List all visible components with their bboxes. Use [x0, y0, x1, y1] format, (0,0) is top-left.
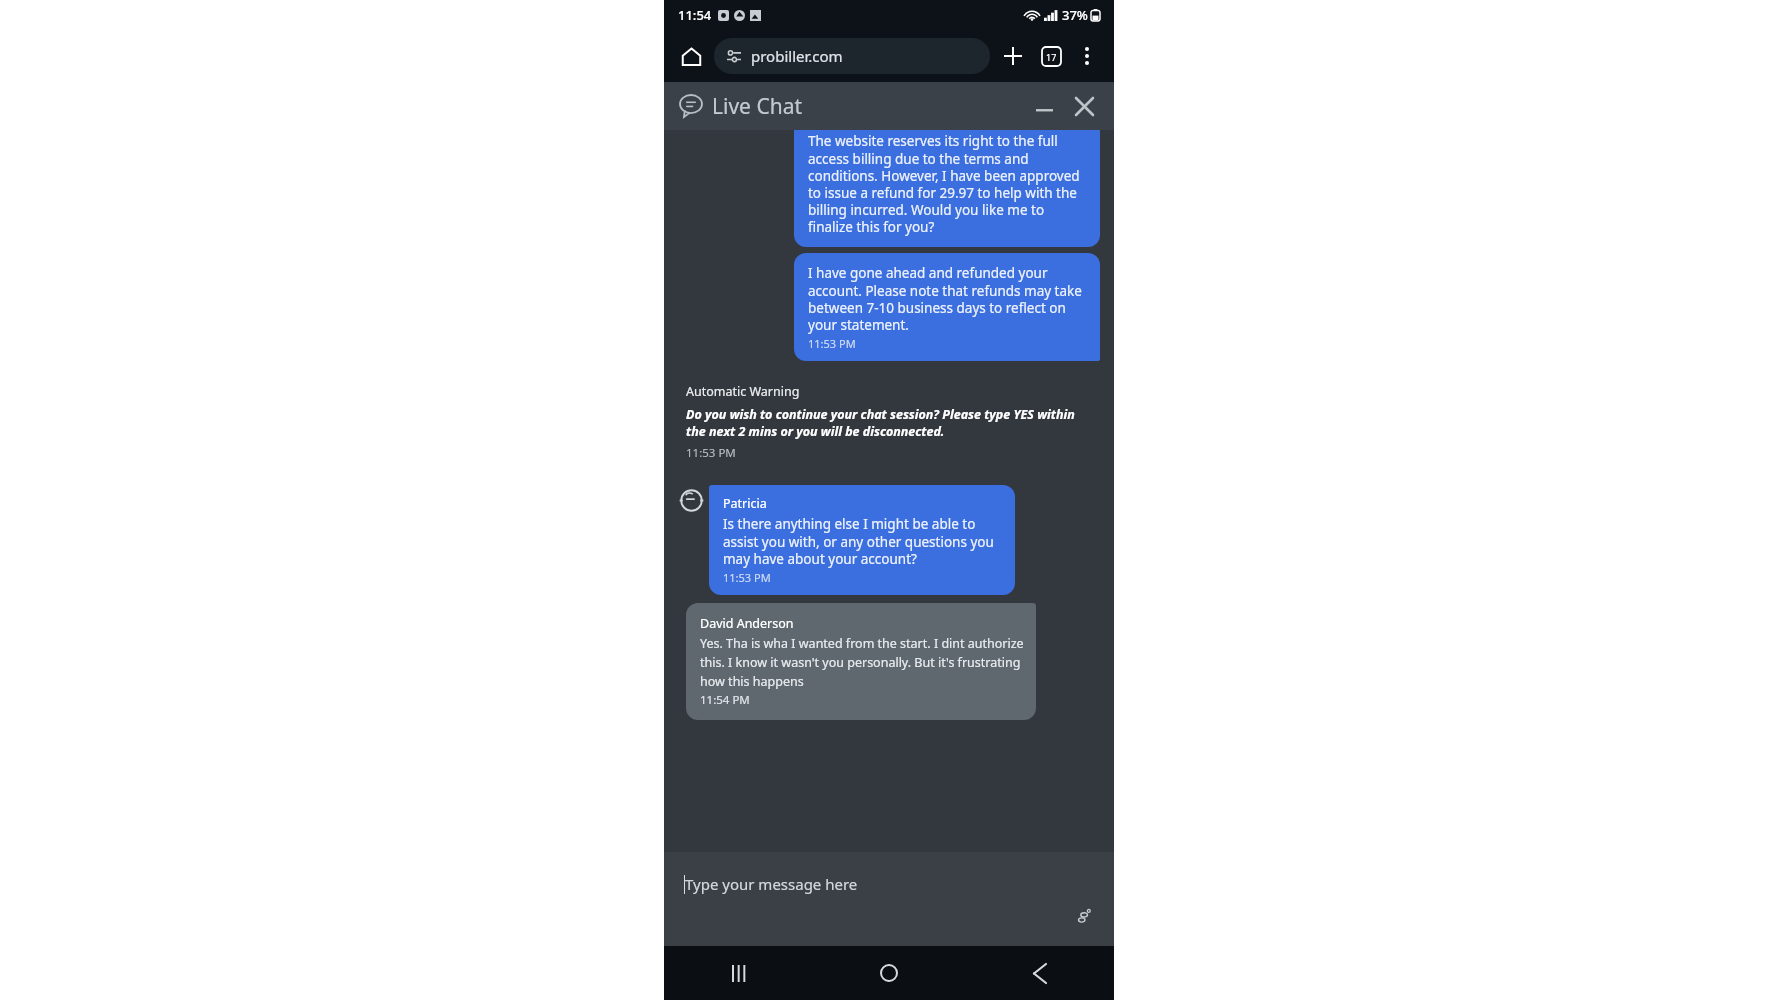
button[interactable]: Minimize: [1024, 86, 1064, 126]
button[interactable]: Close: [1064, 86, 1104, 126]
button[interactable]: Home: [814, 946, 964, 1000]
button[interactable]: Patricia: [709, 485, 1015, 595]
staticText: 11:53 PM: [808, 336, 856, 351]
staticText: 11:53 PM: [686, 445, 736, 461]
button[interactable]: Back: [964, 946, 1114, 1000]
staticText: Yes. Tha is wha I wanted from the start.…: [700, 635, 1024, 690]
staticText: I have gone ahead and refunded your acco…: [808, 264, 1088, 334]
button[interactable]: I have gone ahead and refunded your acco…: [794, 253, 1100, 361]
staticText: 11:53 PM: [723, 570, 771, 585]
staticText: Is there anything else I might be able t…: [723, 515, 1003, 568]
staticText: Live Chat: [712, 92, 803, 121]
staticText: probiller.com: [751, 46, 843, 66]
staticText: 17: [1046, 51, 1057, 63]
button[interactable]: Recent apps: [664, 946, 814, 1000]
staticText: Automatic Warning: [686, 383, 800, 400]
button[interactable]: Home: [674, 39, 708, 73]
button[interactable]: probiller.com: [714, 38, 990, 74]
button[interactable]: David Anderson: [686, 603, 1036, 720]
button[interactable]: More options: [1070, 39, 1104, 73]
staticText: The website reserves its right to the fu…: [808, 132, 1088, 236]
button[interactable]: New tab: [994, 37, 1032, 75]
staticText: Patricia: [723, 495, 767, 512]
staticText: Do you wish to continue your chat sessio…: [686, 406, 1096, 440]
staticText: 11:54: [678, 6, 712, 24]
button[interactable]: Type your message here: [685, 874, 858, 894]
button[interactable]: Tabs: 17 open: [1032, 37, 1070, 75]
staticText: David Anderson: [700, 615, 794, 632]
button[interactable]: Attach: [1068, 900, 1100, 932]
staticText: 37%: [1062, 6, 1088, 24]
staticText: 11:54 PM: [700, 692, 750, 708]
button[interactable]: The website reserves its right to the fu…: [794, 130, 1100, 247]
